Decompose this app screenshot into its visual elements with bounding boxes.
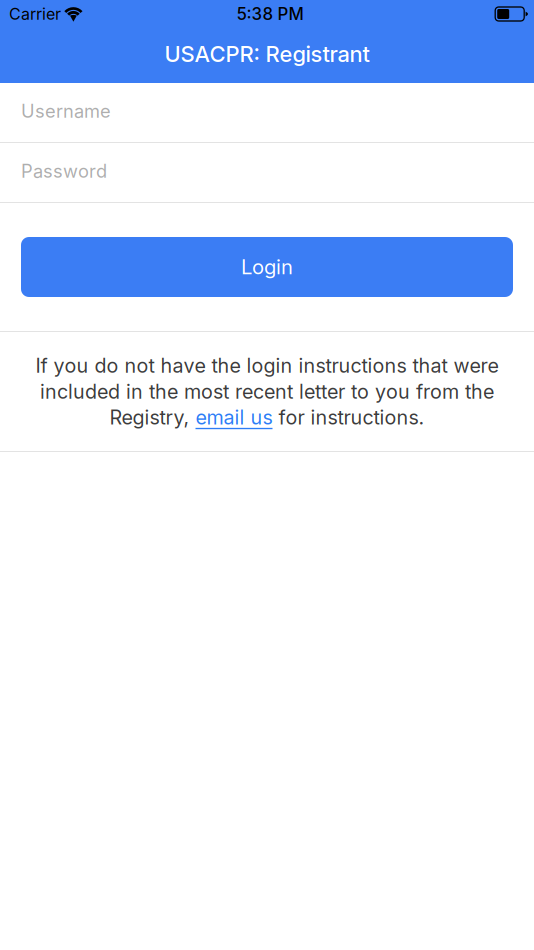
staticText: Username (21, 100, 111, 122)
button[interactable]: Login (21, 237, 513, 297)
staticText: If you do not have the login instruction… (35, 354, 498, 378)
staticText: included in the most recent letter to yo… (40, 380, 494, 403)
staticText: Login (241, 255, 293, 279)
staticText: for instructions. (272, 405, 424, 429)
staticText: Carrier (9, 4, 61, 24)
button[interactable]: email us (195, 405, 272, 429)
staticText: 5:38 PM (236, 4, 303, 24)
staticText: email us (195, 405, 272, 429)
staticText: Registry, (109, 405, 195, 429)
button[interactable]: Username (0, 83, 534, 142)
staticText: Password (21, 160, 107, 182)
button[interactable]: Password (0, 143, 534, 202)
staticText: USACPR: Registrant (164, 41, 369, 67)
